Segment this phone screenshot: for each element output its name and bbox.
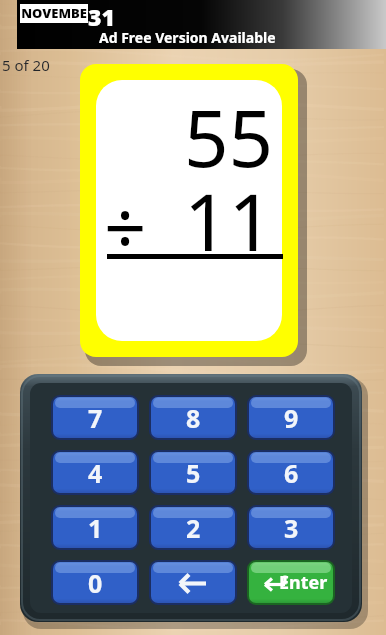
staticText: 4	[88, 456, 103, 490]
staticText: 11	[184, 168, 274, 274]
staticText: 5	[186, 456, 201, 490]
staticText: 8	[186, 401, 201, 435]
button[interactable]: 8	[149, 395, 237, 440]
button[interactable]: 7	[51, 395, 139, 440]
staticText: Enter	[279, 570, 328, 595]
staticText: 9	[284, 401, 299, 435]
staticText: 2	[186, 511, 201, 545]
staticText: 3	[284, 511, 299, 545]
staticText: 0	[88, 566, 103, 600]
button[interactable]: NOVEMBER	[17, 0, 386, 49]
staticText: 55	[184, 84, 274, 190]
button[interactable]: Backspace	[149, 560, 237, 605]
button[interactable]: 3	[247, 505, 335, 550]
staticText: 7	[88, 401, 103, 435]
button[interactable]: 2	[149, 505, 237, 550]
button[interactable]: 5	[149, 450, 237, 495]
staticText: 31	[88, 1, 115, 32]
staticText: Ad Free Version Available	[99, 28, 276, 47]
button[interactable]: 4	[51, 450, 139, 495]
button[interactable]: 55	[80, 64, 304, 363]
staticText: ÷	[104, 176, 147, 277]
button[interactable]: 9	[247, 395, 335, 440]
button[interactable]: Enter	[247, 560, 335, 605]
staticText: 1	[88, 511, 103, 545]
button[interactable]: 1	[51, 505, 139, 550]
button[interactable]: 6	[247, 450, 335, 495]
button[interactable]: 0	[51, 560, 139, 605]
staticText: 6	[284, 456, 299, 490]
staticText: 5 of 20	[2, 55, 50, 75]
staticText: NOVEMBER	[20, 4, 88, 23]
